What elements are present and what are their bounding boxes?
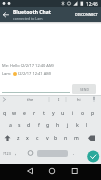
staticText: f: [38, 122, 40, 129]
staticText: k: [76, 122, 79, 129]
staticText: p: [91, 110, 95, 117]
staticText: the: [27, 97, 34, 102]
staticText: i: [72, 110, 74, 117]
staticText: h: [56, 122, 60, 129]
staticText: s: [18, 122, 21, 129]
staticText: Me: Hello (2/2/17 12:40 AM): [2, 63, 54, 68]
staticText: I: [58, 97, 60, 102]
staticText: r: [33, 110, 36, 117]
staticText: Bluetooth Chat: [13, 9, 51, 16]
staticText: Lam:: [2, 71, 13, 76]
staticText: DISCONNECT: [75, 12, 98, 17]
staticText: SEND: [80, 87, 89, 92]
staticText: e: [23, 110, 26, 117]
staticText: y: [52, 110, 55, 117]
staticText: l: [86, 122, 88, 129]
staticText: hi: [77, 97, 81, 102]
staticText: a: [9, 122, 12, 129]
staticText: connected to Lam: [13, 16, 43, 21]
staticText: m: [74, 135, 79, 142]
staticText: u: [61, 110, 65, 117]
staticText: t: [43, 110, 45, 117]
staticText: (2/2/17 12:41 AM): [17, 71, 52, 76]
staticText: b: [54, 135, 58, 142]
staticText: w: [12, 110, 17, 117]
staticText: x: [26, 135, 29, 142]
staticText: n: [64, 135, 68, 142]
staticText: q: [3, 110, 7, 117]
staticText: c: [36, 135, 39, 142]
staticText: v: [46, 135, 49, 142]
staticText: 12:46: [86, 1, 98, 7]
staticText: o: [81, 110, 85, 117]
staticText: .: [73, 150, 75, 157]
staticText: ,: [15, 150, 17, 157]
staticText: d: [27, 122, 31, 129]
staticText: z: [17, 135, 20, 142]
staticText: j: [67, 122, 69, 129]
staticText: ?123: [3, 151, 11, 156]
staticText: g: [46, 122, 50, 129]
